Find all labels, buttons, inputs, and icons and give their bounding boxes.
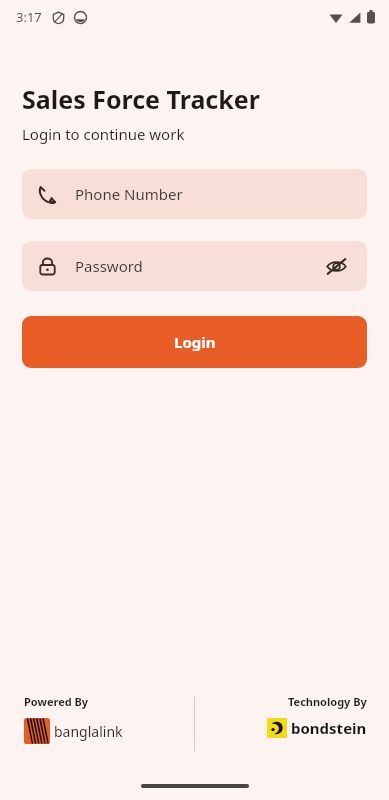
button[interactable]: Password (22, 241, 367, 291)
staticText: Powered By (24, 694, 89, 709)
button[interactable]: Phone Number (22, 169, 367, 219)
staticText: 3:17 (16, 8, 42, 26)
staticText: Phone Number (75, 184, 183, 204)
staticText: banglalink (54, 722, 123, 741)
staticText: Technology By (288, 694, 367, 709)
staticText: Login to continue work (22, 124, 185, 144)
button[interactable]: Login (22, 316, 367, 368)
button[interactable]: Show password (321, 251, 351, 281)
staticText: Login (174, 332, 216, 352)
staticText: Password (75, 256, 321, 276)
staticText: bondstein (291, 718, 367, 738)
staticText: Sales Force Tracker (22, 82, 260, 116)
